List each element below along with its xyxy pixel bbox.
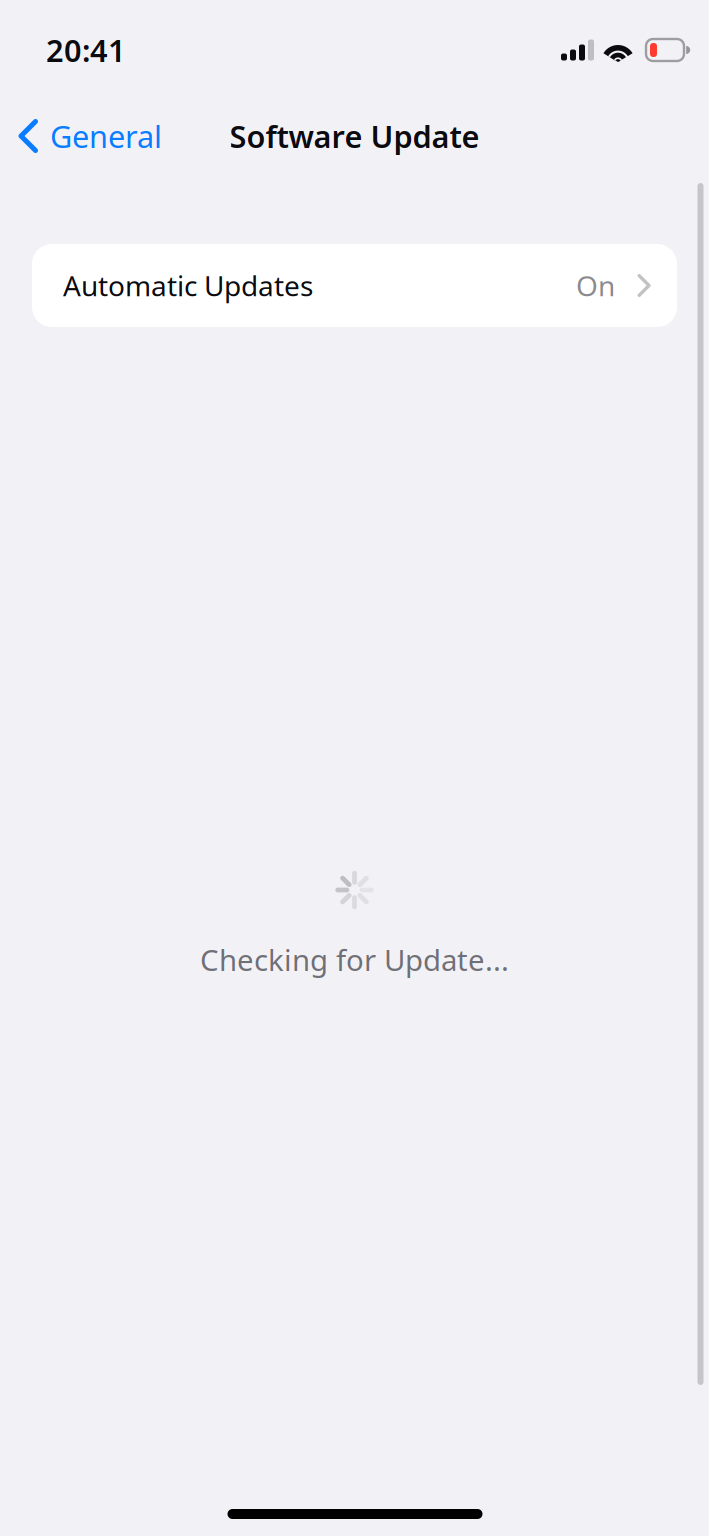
- staticText: Checking for Update...: [200, 940, 509, 979]
- button[interactable]: General: [4, 104, 176, 168]
- staticText: Software Update: [229, 116, 479, 156]
- staticText: 20:41: [46, 30, 126, 70]
- staticText: General: [50, 116, 162, 156]
- button[interactable]: Automatic Updates: [32, 244, 677, 327]
- staticText: Automatic Updates: [63, 267, 313, 304]
- staticText: On: [576, 267, 615, 304]
